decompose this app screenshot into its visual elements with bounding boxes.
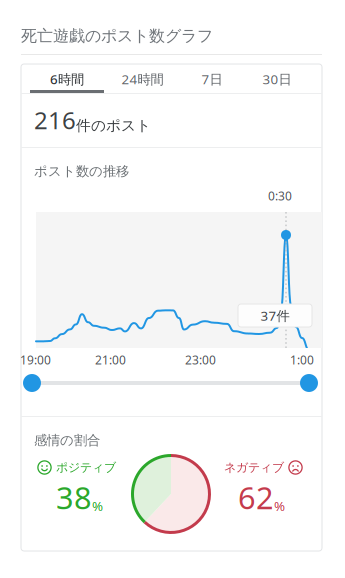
staticText: 38	[56, 477, 92, 518]
button[interactable]: 24時間	[104, 64, 181, 93]
staticText: 23:00	[185, 352, 216, 368]
staticText: 62	[238, 477, 274, 518]
button[interactable]: 範囲の開始	[23, 374, 41, 392]
staticText: 7日	[201, 70, 222, 88]
staticText: 死亡遊戯のポスト数グラフ	[21, 26, 213, 46]
button[interactable]: 30日	[243, 64, 311, 93]
staticText: 6時間	[50, 70, 84, 88]
staticText: ネガティブ	[224, 460, 284, 475]
staticText: ポジティブ	[56, 460, 116, 475]
staticText: %	[274, 497, 285, 515]
staticText: 1:00	[290, 352, 314, 368]
staticText: 24時間	[121, 70, 163, 88]
staticText: 0:30	[268, 188, 292, 204]
staticText: 感情の割合	[34, 432, 100, 448]
button[interactable]: 7日	[181, 64, 243, 93]
button[interactable]: 6時間	[30, 64, 104, 93]
staticText: 30日	[262, 70, 291, 88]
button[interactable]: 範囲の終了	[300, 374, 318, 392]
staticText: 216件のポスト	[34, 104, 151, 136]
staticText: 21:00	[95, 352, 126, 368]
staticText: 19:00	[20, 352, 51, 368]
staticText: %	[92, 497, 103, 515]
staticText: ポスト数の推移	[34, 163, 129, 179]
staticText: 37件	[260, 307, 289, 324]
